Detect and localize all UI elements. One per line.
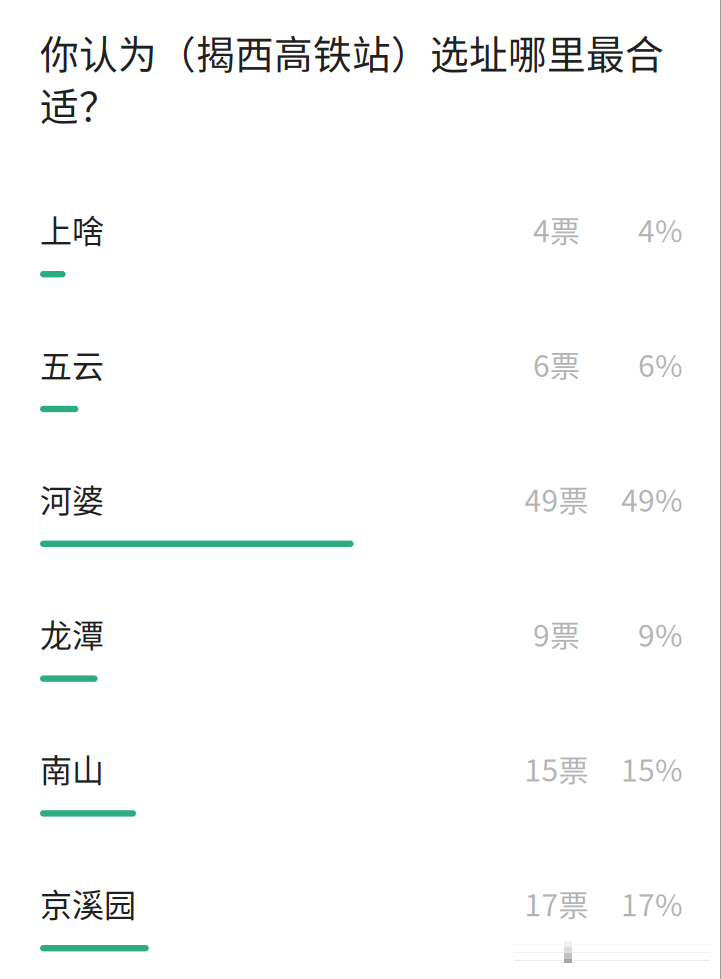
staticText: 河婆 [40,476,104,522]
staticText: 49票 [524,477,588,520]
button[interactable]: 河婆 [40,476,683,610]
staticText: 五云 [40,341,104,387]
staticText: 上啥 [40,206,104,252]
staticText: 南山 [40,745,104,791]
staticText: 15% [621,747,683,790]
staticText: 4票 [533,207,580,251]
staticText: 17票 [524,881,588,925]
staticText: 4% [638,207,683,251]
staticText: 9% [638,612,683,655]
button[interactable]: 京溪园 [40,880,683,979]
staticText: 15票 [524,747,588,790]
staticText: 你认为（揭西高铁站）选址哪里最合适？ [40,24,664,132]
button[interactable]: 五云 [40,341,683,476]
staticText: 6票 [533,342,580,386]
staticText: 京溪园 [40,880,136,926]
staticText: 6% [638,342,683,386]
staticText: 9票 [533,612,580,655]
staticText: 龙潭 [40,610,104,657]
staticText: 49% [621,477,683,520]
button[interactable]: 龙潭 [40,610,683,745]
button[interactable]: 上啥 [40,206,683,341]
button[interactable]: 南山 [40,745,683,880]
staticText: 17% [621,881,683,925]
